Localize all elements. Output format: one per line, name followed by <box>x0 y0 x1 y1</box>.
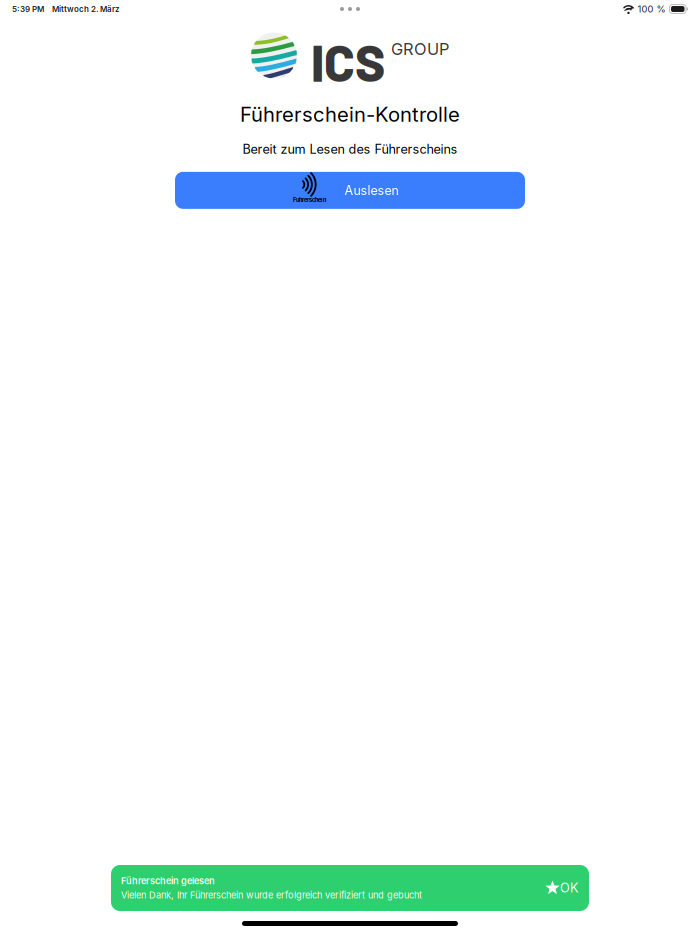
button[interactable]: OK <box>545 872 579 904</box>
staticText: Vielen Dank, Ihr Führerschein wurde erfo… <box>121 889 422 901</box>
button[interactable]: Führerschein <box>175 172 525 209</box>
staticText: ICS <box>311 31 385 92</box>
staticText: Führerschein gelesen <box>121 875 215 886</box>
staticText: Auslesen <box>344 183 398 198</box>
staticText: GROUP <box>391 39 449 59</box>
staticText: Führerschein-Kontrolle <box>240 102 460 126</box>
staticText: Bereit zum Lesen des Führerscheins <box>242 141 457 157</box>
staticText: OK <box>560 880 579 896</box>
staticText: 5:39 PM <box>12 4 44 14</box>
staticText: Führerschein <box>293 196 326 203</box>
staticText: 100 % <box>637 3 665 15</box>
staticText: Mittwoch 2. März <box>52 4 120 14</box>
